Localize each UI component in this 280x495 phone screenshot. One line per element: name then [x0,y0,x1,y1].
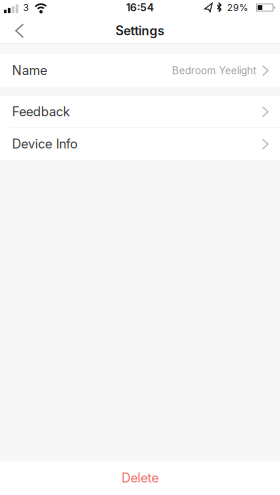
staticText: Settings [115,23,164,38]
staticText: 29% [227,2,248,13]
staticText: Delete [121,470,158,486]
button[interactable]: Name [0,54,280,87]
button[interactable]: Delete [0,461,280,495]
button[interactable]: Back [0,18,34,43]
staticText: 3 [23,2,29,13]
button[interactable]: Device Info [0,128,280,160]
staticText: Device Info [12,136,78,152]
staticText: 16:54 [126,1,154,14]
staticText: Bedroom Yeelight [172,64,256,77]
staticText: Name [12,63,47,78]
staticText: Feedback [12,104,70,119]
button[interactable]: Feedback [0,96,280,127]
